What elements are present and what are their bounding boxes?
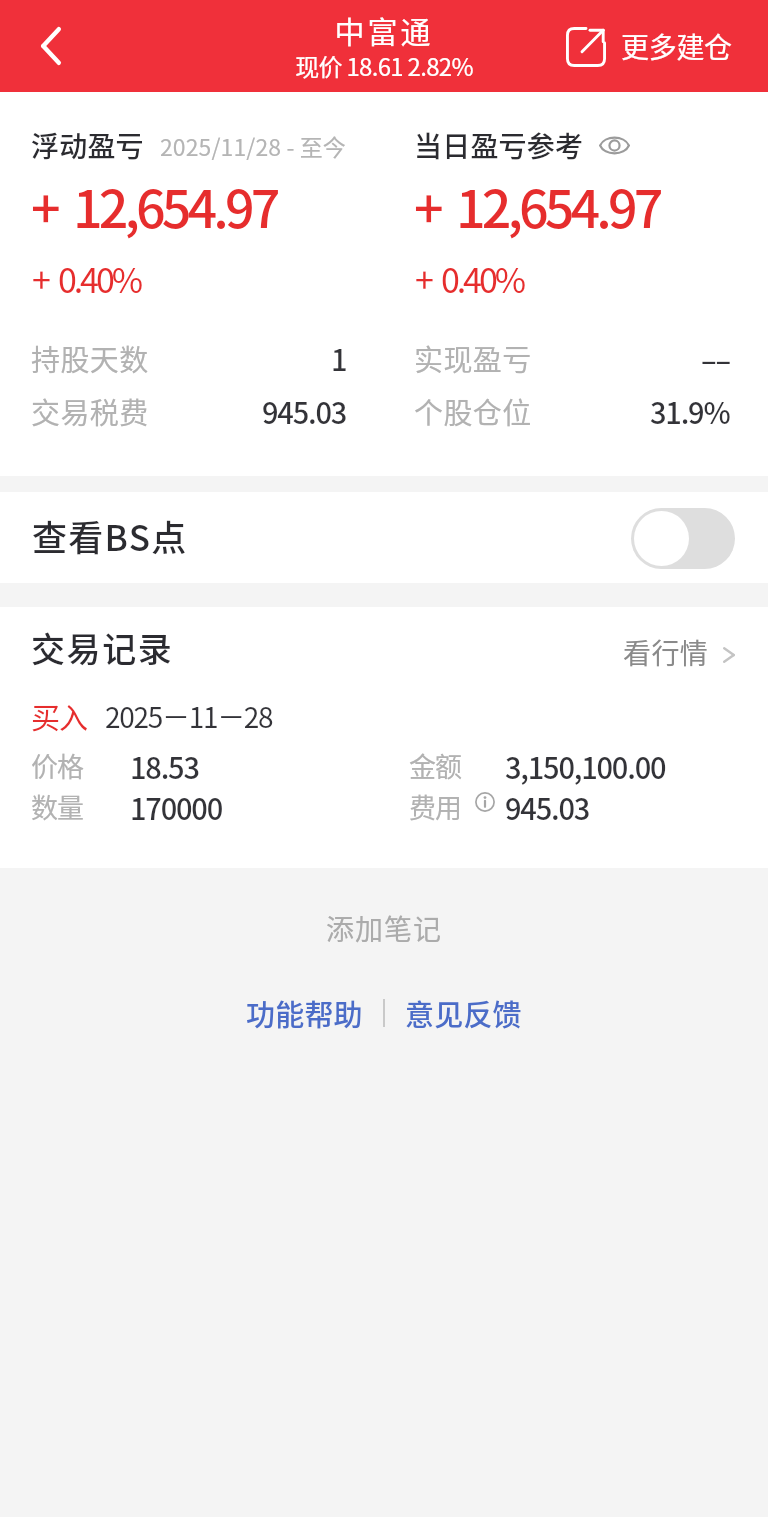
staticText: 费用 (409, 787, 461, 826)
staticText: 945.03 (262, 390, 347, 432)
staticText: 31.9% (650, 390, 730, 432)
button[interactable]: Toggle BS points (631, 508, 735, 569)
staticText: 170000 (130, 786, 222, 828)
button[interactable]: 功能帮助 (246, 992, 363, 1034)
staticText: 当日盈亏参考 (414, 125, 584, 166)
staticText: + (31, 168, 61, 243)
staticText: 实现盈亏 (414, 337, 532, 379)
staticText: + (32, 254, 51, 303)
button[interactable]: Back (21, 0, 81, 92)
staticText: 1 (331, 337, 347, 379)
staticText: 2025/11/28 - 至今 (160, 129, 346, 162)
staticText: 12,654.97 (73, 168, 277, 243)
staticText: 金额 (409, 746, 461, 785)
staticText: 12,654.97 (456, 168, 660, 243)
button[interactable]: 查看BS点 (0, 492, 768, 583)
staticText: 更多建仓 (621, 26, 732, 67)
staticText: 945.03 (505, 786, 590, 828)
staticText: + (414, 168, 444, 243)
staticText: 2025－11－28 (105, 696, 273, 737)
staticText: 现价 18.61 2.82% (0, 48, 768, 83)
staticText: 个股仓位 (414, 390, 532, 432)
button[interactable]: 意见反馈 (405, 992, 522, 1034)
staticText: –– (701, 337, 730, 379)
staticText: + (415, 254, 434, 303)
staticText: 价格 (31, 746, 83, 785)
staticText: 持股天数 (31, 337, 149, 379)
staticText: 浮动盈亏 (31, 125, 144, 166)
staticText: 0.40% (58, 254, 140, 303)
button[interactable]: 看行情 (623, 632, 735, 673)
staticText: 数量 (31, 787, 83, 826)
staticText: 交易记录 (31, 623, 174, 672)
staticText: 0.40% (441, 254, 523, 303)
staticText: 中富通 (0, 8, 768, 51)
staticText: 看行情 (623, 632, 709, 673)
staticText: 查看BS点 (32, 510, 188, 561)
staticText: 买入 (31, 695, 88, 737)
staticText: 18.53 (130, 745, 199, 787)
staticText: 交易税费 (31, 390, 149, 432)
staticText: 3,150,100.00 (505, 745, 666, 787)
button[interactable]: 添加笔记 (0, 908, 768, 949)
button[interactable]: 更多建仓 (566, 26, 732, 67)
